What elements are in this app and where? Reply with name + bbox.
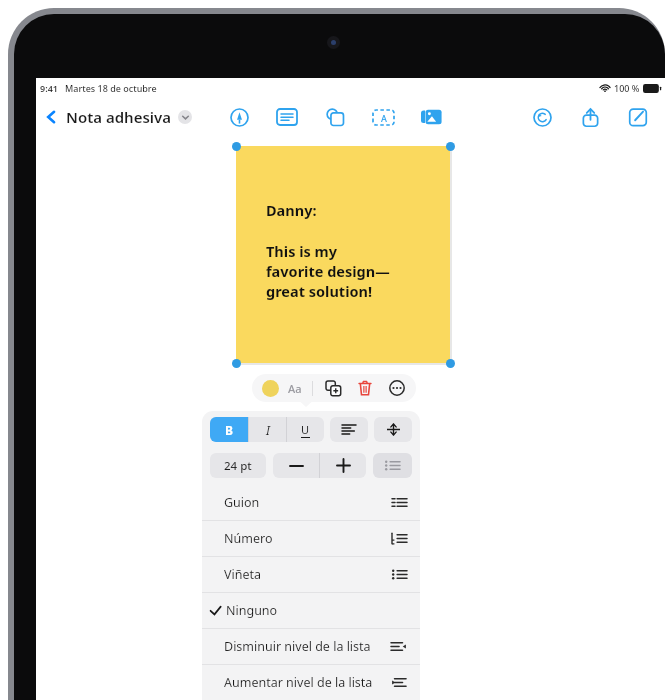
staticText: This is my favorite design— great soluti… xyxy=(266,241,390,301)
other: Back xyxy=(44,107,58,127)
button[interactable]: Markup xyxy=(226,104,252,130)
button[interactable]: Viñeta xyxy=(202,557,420,592)
button[interactable]: Ninguno xyxy=(202,593,420,628)
staticText: Aa xyxy=(288,381,302,396)
staticText: I xyxy=(266,422,270,438)
staticText: Nota adhesiva xyxy=(66,107,172,127)
button[interactable]: Text box xyxy=(274,104,300,130)
button[interactable]: Lists xyxy=(373,453,412,478)
staticText: 9:41 xyxy=(40,82,58,94)
button[interactable]: Aumentar nivel de la lista xyxy=(202,665,420,700)
button[interactable]: Compose xyxy=(625,104,651,130)
staticText: 24 pt xyxy=(224,458,252,474)
staticText: A xyxy=(381,112,387,124)
button[interactable]: Media xyxy=(418,104,444,130)
button[interactable]: Decrease size xyxy=(273,453,319,478)
button[interactable]: Aa xyxy=(288,381,302,396)
button[interactable]: More xyxy=(388,379,406,397)
button[interactable]: 24 pt xyxy=(210,453,266,478)
button[interactable]: Share xyxy=(577,104,603,130)
button[interactable]: Italic xyxy=(249,417,286,442)
button[interactable]: Shapes xyxy=(322,104,348,130)
button[interactable]: Text style xyxy=(370,104,396,130)
staticText: Viñeta xyxy=(224,566,262,583)
button[interactable]: Duplicate xyxy=(324,379,342,397)
button[interactable]: Danny: xyxy=(236,146,450,363)
staticText: Danny: xyxy=(266,200,317,220)
button[interactable]: Delete xyxy=(356,379,374,397)
button[interactable]: Underline xyxy=(287,417,324,442)
staticText: 100 % xyxy=(614,82,640,94)
button[interactable]: Increase size xyxy=(320,453,366,478)
button[interactable]: Bold xyxy=(210,417,248,442)
button[interactable]: Número xyxy=(202,521,420,556)
button[interactable]: Back xyxy=(42,103,194,131)
staticText: Guion xyxy=(224,494,260,511)
staticText: B xyxy=(225,422,233,438)
button[interactable]: Note color xyxy=(262,380,279,397)
staticText: Disminuir nivel de la lista xyxy=(224,638,371,655)
staticText: Número xyxy=(224,530,273,547)
button[interactable]: Line spacing xyxy=(374,417,412,442)
staticText: Martes 18 de octubre xyxy=(65,82,157,94)
staticText: Ninguno xyxy=(226,602,278,619)
staticText: Aumentar nivel de la lista xyxy=(224,674,373,691)
other: More options xyxy=(178,110,192,124)
staticText: U xyxy=(301,422,310,437)
button[interactable]: Alignment xyxy=(330,417,368,442)
button[interactable]: Undo xyxy=(529,104,555,130)
button[interactable]: Disminuir nivel de la lista xyxy=(202,629,420,664)
button[interactable]: Guion xyxy=(202,485,420,520)
